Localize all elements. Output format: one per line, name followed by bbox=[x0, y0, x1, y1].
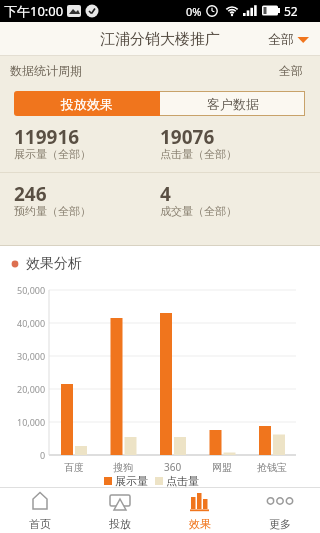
staticText: 全部 bbox=[279, 63, 303, 78]
staticText: 360 bbox=[164, 460, 182, 474]
staticText: 百度 bbox=[64, 461, 84, 474]
staticText: 搜狗 bbox=[113, 461, 133, 474]
staticText: 0% bbox=[186, 4, 202, 19]
staticText: 投放 bbox=[109, 517, 131, 531]
staticText: 效果分析 bbox=[26, 255, 82, 273]
staticText: 客户数据 bbox=[207, 96, 259, 112]
staticText: 全部 bbox=[268, 31, 294, 47]
staticText: 4 bbox=[160, 181, 171, 201]
staticText: 数据统计周期 bbox=[10, 63, 82, 78]
button[interactable]: 首页 bbox=[0, 488, 80, 533]
button[interactable]: 投放 bbox=[80, 488, 160, 533]
button[interactable]: 更多 bbox=[240, 488, 320, 533]
staticText: 展示量（全部） bbox=[14, 147, 91, 161]
button[interactable]: 全部 bbox=[268, 22, 314, 56]
staticText: 0 bbox=[40, 449, 46, 461]
staticText: 20,000 bbox=[17, 383, 46, 395]
staticText: 抢钱宝 bbox=[257, 461, 287, 474]
staticText: 网盟 bbox=[212, 461, 232, 474]
button[interactable]: 客户数据 bbox=[160, 91, 305, 116]
staticText: 50,000 bbox=[17, 284, 46, 296]
staticText: 首页 bbox=[29, 517, 51, 531]
staticText: 成交量（全部） bbox=[160, 204, 237, 218]
staticText: 江浦分销大楼推广 bbox=[100, 30, 220, 49]
staticText: 119916 bbox=[14, 124, 80, 144]
staticText: 点击量（全部） bbox=[160, 147, 237, 161]
staticText: 更多 bbox=[269, 517, 291, 531]
staticText: 展示量 bbox=[115, 474, 148, 488]
staticText: 52 bbox=[284, 3, 298, 19]
button[interactable]: 投放效果 bbox=[14, 91, 160, 116]
staticText: 效果 bbox=[189, 517, 211, 531]
staticText: 投放效果 bbox=[61, 96, 113, 112]
staticText: 预约量（全部） bbox=[14, 204, 91, 218]
button[interactable]: 效果 bbox=[160, 488, 240, 533]
staticText: 246 bbox=[14, 181, 47, 201]
button[interactable]: 全部 bbox=[268, 58, 314, 82]
staticText: 10,000 bbox=[17, 416, 46, 428]
staticText: 点击量 bbox=[166, 474, 199, 488]
staticText: 40,000 bbox=[17, 317, 46, 329]
staticText: 下午10:00 bbox=[4, 2, 64, 20]
staticText: 19076 bbox=[160, 124, 215, 144]
staticText: 30,000 bbox=[17, 350, 46, 362]
